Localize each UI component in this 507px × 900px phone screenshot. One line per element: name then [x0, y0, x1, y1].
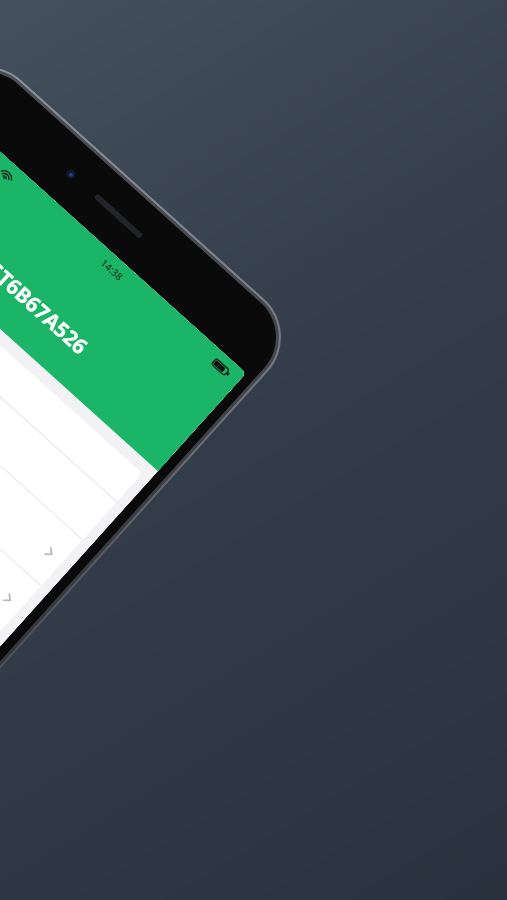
staticText: 14:38: [98, 256, 126, 283]
staticText: Netzbetreiber: [0, 118, 4, 173]
button[interactable]: 26.10.2019 - 12:25: [0, 248, 116, 539]
button[interactable]: Flughafen Köln-Bonn (CGN) 51147: [0, 286, 82, 586]
button[interactable]: (RheinEnergieStadion) Aachener Straße: [0, 332, 41, 632]
staticText: GT6B67A526: [0, 254, 94, 361]
